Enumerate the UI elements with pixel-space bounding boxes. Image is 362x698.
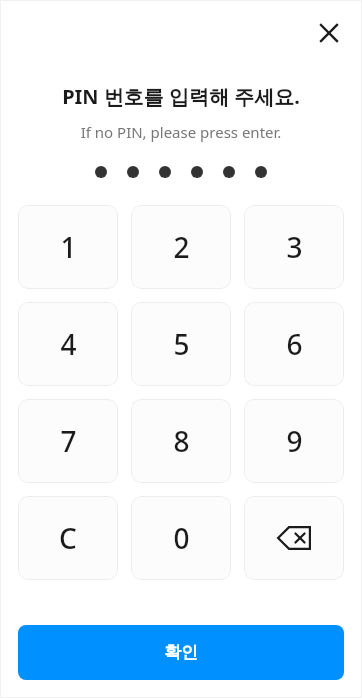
staticText: 4 bbox=[60, 325, 77, 363]
button[interactable]: C bbox=[18, 496, 118, 580]
staticText: 6 bbox=[286, 325, 303, 363]
button[interactable]: Close bbox=[310, 14, 348, 52]
staticText: 7 bbox=[60, 422, 77, 460]
button[interactable]: 7 bbox=[18, 399, 118, 483]
button[interactable]: Backspace bbox=[244, 496, 344, 580]
staticText: 확인 bbox=[164, 642, 198, 663]
button[interactable]: 확인 bbox=[18, 625, 344, 680]
button[interactable]: 8 bbox=[131, 399, 231, 483]
button[interactable]: 6 bbox=[244, 302, 344, 386]
button[interactable]: 2 bbox=[131, 205, 231, 289]
staticText: 9 bbox=[286, 422, 303, 460]
staticText: PIN 번호를 입력해 주세요. bbox=[0, 83, 362, 110]
staticText: 0 bbox=[173, 519, 190, 557]
button[interactable]: 3 bbox=[244, 205, 344, 289]
button[interactable]: 4 bbox=[18, 302, 118, 386]
staticText: 2 bbox=[173, 228, 190, 266]
staticText: If no PIN, please press enter. bbox=[0, 122, 362, 142]
staticText: 8 bbox=[173, 422, 190, 460]
button[interactable]: 9 bbox=[244, 399, 344, 483]
button[interactable]: 1 bbox=[18, 205, 118, 289]
staticText: 1 bbox=[60, 228, 77, 266]
staticText: 5 bbox=[173, 325, 190, 363]
staticText: 3 bbox=[286, 228, 303, 266]
button[interactable]: 5 bbox=[131, 302, 231, 386]
staticText: C bbox=[59, 519, 77, 557]
button[interactable]: 0 bbox=[131, 496, 231, 580]
